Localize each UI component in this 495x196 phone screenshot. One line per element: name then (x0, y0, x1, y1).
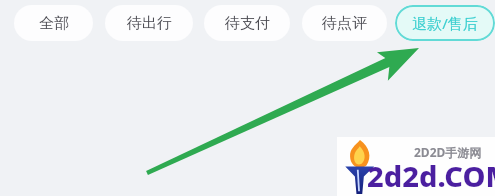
button[interactable]: 全部 (14, 5, 93, 41)
button[interactable]: 退款/售后 (395, 5, 495, 41)
staticText: 退款/售后 (412, 13, 478, 33)
staticText: 待出行 (127, 14, 172, 33)
staticText: 2D2D手游网 (414, 144, 482, 160)
other: 2d2d.COM watermark (337, 137, 495, 196)
button[interactable]: 待支付 (204, 5, 290, 41)
staticText: 全部 (39, 14, 69, 33)
button[interactable]: 待出行 (105, 5, 193, 41)
staticText: 2d2d.COM (367, 156, 495, 195)
button[interactable]: 待点评 (302, 5, 387, 41)
staticText: 待点评 (322, 14, 367, 33)
staticText: 待支付 (225, 14, 270, 33)
